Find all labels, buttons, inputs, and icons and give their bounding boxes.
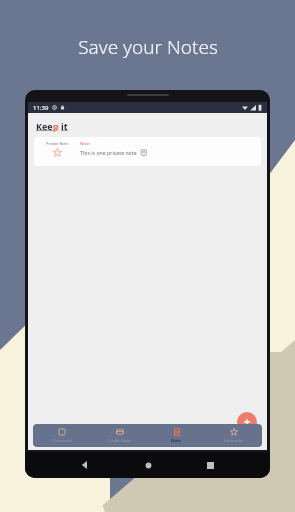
- staticText: 11:39: [33, 104, 49, 112]
- other: Home: [145, 462, 152, 469]
- other: Copy note: [140, 149, 147, 156]
- button[interactable]: Add note: [237, 412, 257, 432]
- staticText: Credit Card: [108, 438, 131, 444]
- staticText: This is one private note: [80, 149, 137, 156]
- staticText: Private Note: [46, 141, 69, 146]
- other: Back: [81, 461, 89, 469]
- staticText: Favourite: [224, 438, 243, 444]
- button[interactable]: Credit Card: [91, 424, 148, 447]
- button[interactable]: Favourite: [205, 424, 262, 447]
- staticText: Note: [171, 438, 182, 444]
- button[interactable]: Password: [33, 424, 91, 447]
- button[interactable]: Note: [148, 424, 205, 447]
- staticText: Kee: [36, 120, 53, 132]
- staticText: p: [53, 120, 59, 132]
- button[interactable]: Private Note: [34, 137, 261, 166]
- staticText: Save your Notes: [78, 34, 218, 60]
- staticText: it: [61, 120, 68, 132]
- staticText: Note: [80, 141, 90, 147]
- staticText: Password: [53, 438, 72, 444]
